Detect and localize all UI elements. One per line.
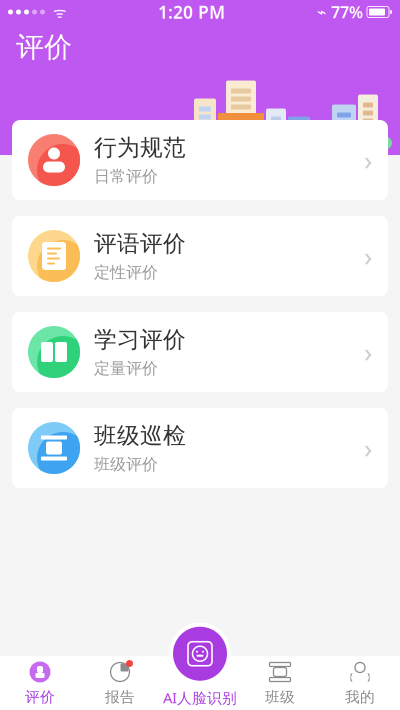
staticText: AI人脸识别 (163, 688, 237, 707)
button[interactable]: 班级巡检 (12, 408, 388, 488)
staticText: 日常评价 (94, 167, 158, 186)
button[interactable]: 我的 (320, 656, 400, 710)
staticText: 班级巡检 (94, 422, 186, 450)
button[interactable]: 班级 (240, 656, 320, 710)
button[interactable]: 评价 (0, 656, 80, 710)
button[interactable]: 行为规范 (12, 120, 388, 200)
staticText: 行为规范 (94, 134, 186, 162)
staticText: 班级评价 (94, 455, 158, 474)
staticText: 77% (331, 1, 363, 23)
staticText: › (364, 142, 372, 178)
staticText: › (364, 238, 372, 274)
staticText: ⌁ (317, 3, 327, 21)
button[interactable]: 学习评价 (12, 312, 388, 392)
staticText: 学习评价 (94, 326, 186, 354)
staticText: 报告 (105, 688, 135, 706)
button[interactable]: 报告 (80, 656, 160, 710)
staticText: 定量评价 (94, 359, 158, 378)
staticText: › (364, 430, 372, 466)
button[interactable]: AI人脸识别 (163, 623, 237, 707)
staticText: 我的 (345, 688, 375, 706)
staticText: 评价 (16, 30, 72, 64)
staticText: 评语评价 (94, 230, 186, 258)
staticText: 1:20 PM (158, 0, 225, 23)
staticText: 评价 (25, 688, 55, 706)
staticText: 定性评价 (94, 263, 158, 282)
staticText: ᯤ (45, 2, 66, 22)
button[interactable]: 评语评价 (12, 216, 388, 296)
staticText: 班级 (265, 688, 295, 706)
staticText: › (364, 334, 372, 370)
